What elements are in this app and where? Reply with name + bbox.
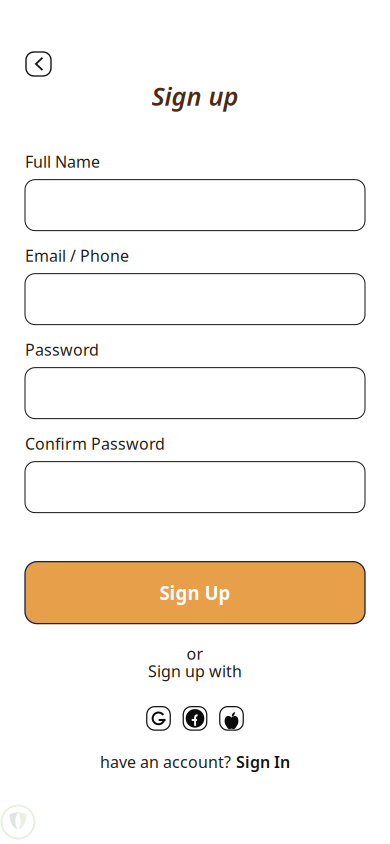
staticText: have an account?	[100, 751, 231, 772]
button[interactable]: Sign up with Facebook	[183, 707, 207, 730]
staticText: Sign up	[151, 79, 238, 113]
staticText: Password	[25, 339, 99, 360]
button[interactable]: Sign Up	[25, 562, 365, 624]
button[interactable]: Sign up with Google	[147, 707, 170, 730]
button[interactable]: Sign up with Apple	[220, 707, 243, 730]
staticText: Sign Up	[159, 580, 230, 605]
button[interactable]: have an account?	[0, 751, 390, 772]
staticText: or	[186, 643, 203, 664]
staticText: Sign In	[236, 751, 290, 772]
staticText: Confirm Password	[25, 433, 165, 454]
staticText: Sign up with	[148, 660, 242, 682]
button[interactable]: Back	[26, 52, 51, 76]
staticText: Full Name	[25, 151, 100, 172]
staticText: Email / Phone	[25, 245, 129, 266]
